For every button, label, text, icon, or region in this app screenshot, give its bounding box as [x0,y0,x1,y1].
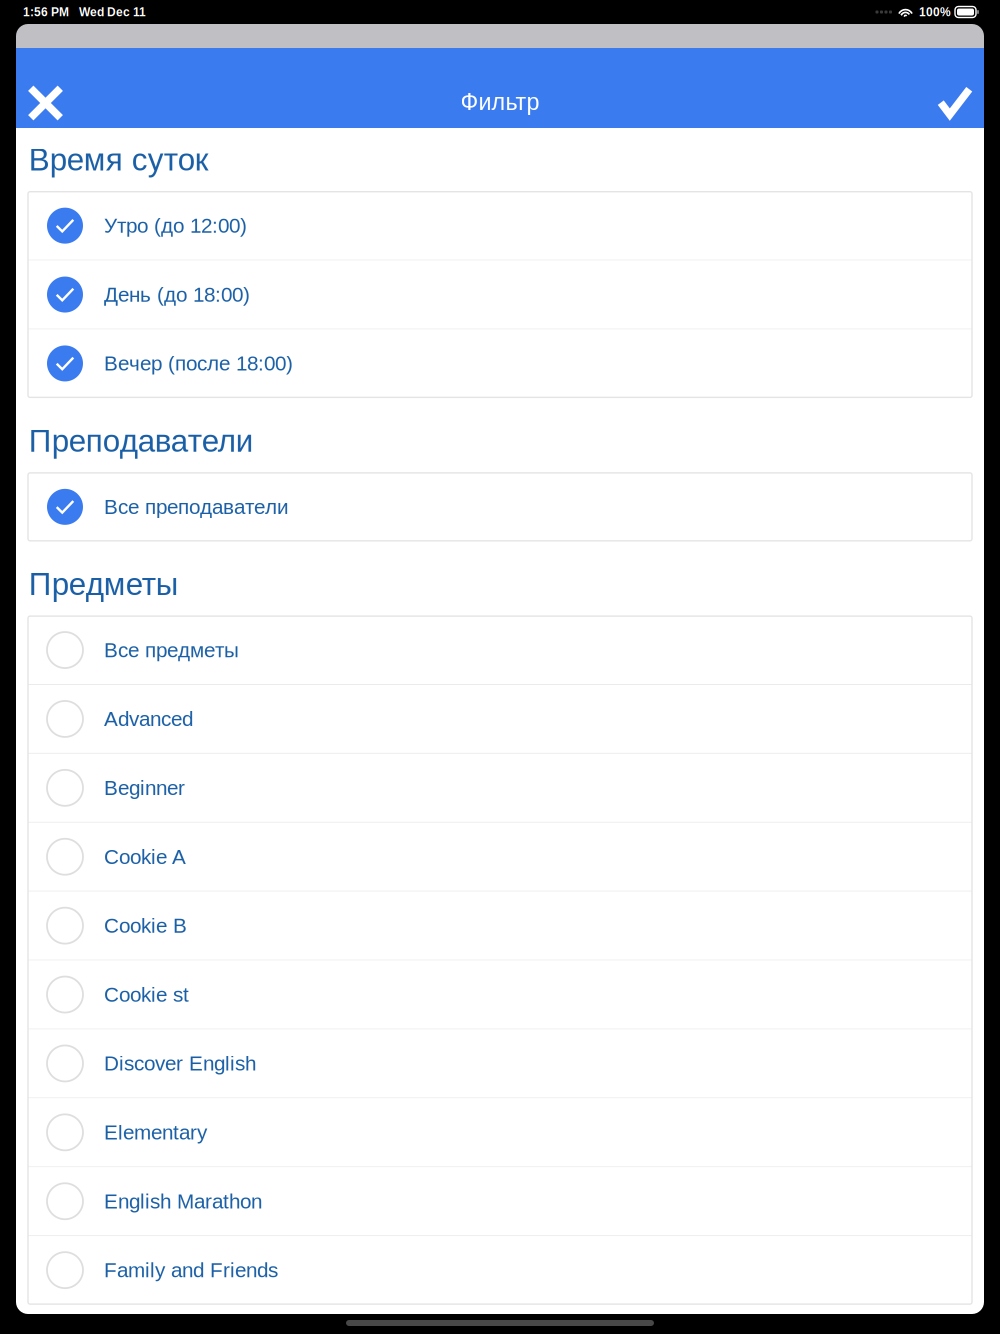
button[interactable]: Advanced [28,685,972,753]
staticText: Discover English [104,1052,256,1075]
staticText: Время суток [29,142,209,177]
staticText: Elementary [104,1121,207,1144]
staticText: Cookie st [104,983,189,1006]
button[interactable]: Утро (до 12:00) [28,192,972,260]
staticText: Фильтр [460,89,539,115]
button[interactable]: Elementary [28,1098,972,1166]
staticText: Утро (до 12:00) [104,214,247,237]
button[interactable]: Все преподаватели [28,473,972,541]
staticText: Family and Friends [104,1259,278,1282]
staticText: День (до 18:00) [104,283,250,306]
staticText: Преподаватели [29,423,254,458]
button[interactable]: Cookie A [28,823,972,891]
staticText: Cookie B [104,914,187,937]
staticText: 100% [919,5,951,19]
button[interactable]: Cookie st [28,961,972,1028]
button[interactable]: Все предметы [28,616,972,684]
staticText: Cookie A [104,845,186,868]
staticText: Advanced [104,707,193,730]
button[interactable]: Вечер (после 18:00) [28,329,972,397]
staticText: Все преподаватели [104,495,289,518]
staticText: Beginner [104,776,185,799]
staticText: Wed Dec 11 [79,5,146,19]
button[interactable]: Beginner [28,754,972,822]
staticText: Вечер (после 18:00) [104,352,293,375]
staticText: English Marathon [104,1190,262,1213]
button[interactable]: Apply filter [919,69,984,130]
staticText: 1:56 PM [23,5,69,19]
button[interactable]: День (до 18:00) [28,261,972,328]
button[interactable]: Discover English [28,1029,972,1097]
button[interactable]: Cookie B [28,892,972,960]
button[interactable]: Close [16,66,82,133]
button[interactable]: English Marathon [28,1167,972,1235]
staticText: Все предметы [104,638,239,662]
button[interactable]: Family and Friends [28,1236,972,1304]
staticText: Предметы [29,567,179,602]
